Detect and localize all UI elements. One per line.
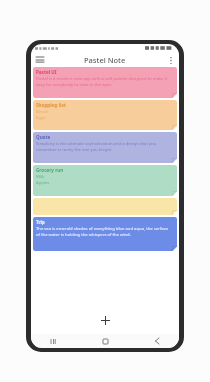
button[interactable]: Grocery run	[33, 165, 177, 196]
staticText: Trip	[36, 219, 45, 225]
button[interactable]: Quote	[33, 132, 177, 163]
button[interactable]: Trip	[33, 217, 177, 251]
button[interactable]: Shopping list	[33, 100, 177, 130]
staticText: Grocery run	[36, 167, 64, 173]
staticText: Bread Eggs	[36, 109, 48, 121]
staticText: Simplicity is the ultimate sophisticatio…	[36, 141, 172, 153]
staticText: Pastel is a modern note app with a soft …	[36, 76, 172, 88]
staticText: Pastel Note	[84, 55, 126, 65]
button[interactable]: More options	[165, 54, 177, 66]
staticText: Quote	[36, 134, 51, 140]
button[interactable]: Home	[97, 335, 113, 347]
staticText: Milk Apples	[36, 174, 50, 186]
button[interactable]	[33, 198, 177, 215]
staticText: Shopping list	[36, 102, 66, 108]
staticText: Pastel UI	[36, 69, 57, 75]
button[interactable]: Add note	[96, 311, 114, 329]
staticText: The sea is emerald shades of everything …	[36, 226, 172, 238]
button[interactable]: Back	[149, 335, 165, 347]
button[interactable]: Open navigation menu	[33, 53, 47, 67]
button[interactable]: Pastel UI	[33, 67, 177, 98]
button[interactable]: Recent apps	[45, 335, 61, 347]
